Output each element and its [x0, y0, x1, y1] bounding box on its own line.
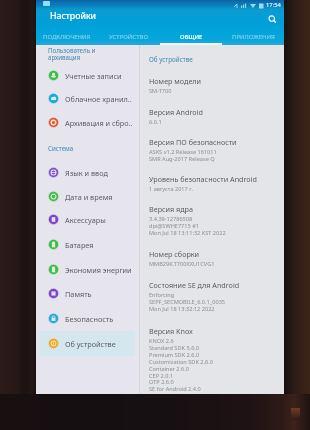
- staticText: Container 2.6.0: [149, 365, 189, 373]
- staticText: SMR Aug-2017 Release Q: [149, 155, 215, 163]
- button[interactable]: Search: [264, 11, 281, 28]
- button[interactable]: Учетные записи: [40, 63, 135, 88]
- staticText: Система: [48, 144, 74, 152]
- button[interactable]: Язык и ввод: [40, 160, 135, 185]
- staticText: ПОДКЛЮЧЕНИЯ: [43, 33, 91, 41]
- staticText: Безопасность: [65, 314, 114, 324]
- staticText: Экономия энергии: [65, 265, 132, 275]
- staticText: OTP 2.6.0: [149, 378, 174, 386]
- staticText: Дата и время: [65, 192, 113, 202]
- staticText: Аксессуары: [65, 215, 106, 225]
- staticText: Язык и ввод: [65, 168, 108, 178]
- staticText: MMB29K.T700XXU1CVG1: [149, 260, 215, 268]
- staticText: SEPF_SECMOBILE_6.0.1_0035: [149, 298, 226, 306]
- button[interactable]: Архивация и сбро..: [40, 110, 135, 135]
- staticText: Mon Jul 18 13:11:32 KST 2022: [149, 229, 226, 237]
- button[interactable]: ПРИЛОЖЕНИЯ: [222, 28, 284, 45]
- staticText: Состояние SE для Android: [149, 280, 240, 290]
- staticText: Версия Knox: [149, 326, 193, 336]
- button[interactable]: Версия Knox: [149, 326, 293, 391]
- button[interactable]: Об устройстве: [40, 331, 135, 356]
- staticText: 1 августа 2017 г.: [149, 185, 193, 193]
- staticText: Версия ПО безопасности: [149, 137, 237, 147]
- staticText: 17:54: [266, 1, 281, 9]
- staticText: Номер сборки: [149, 249, 200, 259]
- button[interactable]: Дата и время: [40, 184, 135, 209]
- staticText: ПРИЛОЖЕНИЯ: [232, 33, 275, 41]
- staticText: Облачное хранил..: [65, 94, 132, 104]
- staticText: ASKS v1.2 Release 161011: [149, 148, 217, 156]
- staticText: ОБЩИЕ: [180, 33, 203, 41]
- button[interactable]: Версия ядра: [149, 204, 293, 235]
- button[interactable]: ПОДКЛЮЧЕНИЯ: [36, 28, 98, 45]
- staticText: KNOX 2.6: [149, 337, 174, 345]
- staticText: Память: [65, 289, 92, 299]
- staticText: Об устройстве: [149, 55, 193, 64]
- staticText: Учетные записи: [65, 71, 122, 81]
- button[interactable]: Экономия энергии: [40, 257, 135, 282]
- staticText: Архивация и сбро..: [65, 118, 133, 128]
- staticText: Настройки: [50, 10, 97, 22]
- staticText: Premium SDK 2.6.0: [149, 351, 200, 359]
- staticText: Батарея: [65, 240, 94, 250]
- staticText: Версия Android: [149, 107, 203, 117]
- button[interactable]: Безопасность: [40, 306, 135, 331]
- button[interactable]: Уровень безопасности Android: [149, 174, 293, 191]
- staticText: 3.4.39-12786508: [149, 215, 193, 223]
- staticText: Номер модели: [149, 76, 202, 86]
- staticText: УСТРОЙСТВО: [109, 33, 149, 41]
- button[interactable]: Версия ПО безопасности: [149, 137, 293, 161]
- staticText: Customization SDK 2.6.0: [149, 358, 213, 366]
- staticText: CEP 2.0.1: [149, 372, 174, 380]
- button[interactable]: ОБЩИЕ: [160, 28, 222, 45]
- staticText: Enforcing: [149, 291, 175, 299]
- button[interactable]: Номер модели: [149, 76, 293, 93]
- button[interactable]: Состояние SE для Android: [149, 280, 293, 311]
- button[interactable]: УСТРОЙСТВО: [98, 28, 160, 45]
- button[interactable]: Версия Android: [149, 107, 293, 124]
- button[interactable]: Аксессуары: [40, 207, 135, 232]
- staticText: Пользователь и: [48, 46, 96, 54]
- staticText: 6.0.1: [149, 118, 162, 126]
- staticText: Уровень безопасности Android: [149, 174, 257, 184]
- staticText: SM-T700: [149, 87, 172, 95]
- staticText: Об устройстве: [65, 339, 116, 349]
- staticText: SE for Android 2.4.0: [149, 385, 201, 393]
- staticText: dpi@SWHE7715 #1: [149, 222, 199, 230]
- button[interactable]: Память: [40, 281, 135, 306]
- button[interactable]: Облачное хранил..: [40, 86, 135, 111]
- staticText: Mon Jul 18 13:32:12 2022: [149, 305, 215, 313]
- staticText: Версия ядра: [149, 204, 193, 214]
- button[interactable]: Батарея: [40, 232, 135, 257]
- staticText: Standard SDK 5.6.0: [149, 344, 200, 352]
- button[interactable]: Номер сборки: [149, 249, 293, 266]
- staticText: архивация: [48, 53, 81, 61]
